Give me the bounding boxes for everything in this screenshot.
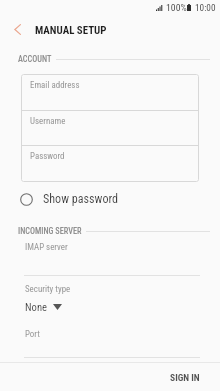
- staticText: INCOMING SERVER: [18, 226, 82, 236]
- staticText: 10:00: [195, 2, 216, 13]
- staticText: Show password: [43, 192, 119, 206]
- staticText: IMAP server: [25, 242, 68, 252]
- staticText: 100%: [166, 2, 187, 13]
- staticText: MANUAL SETUP: [35, 24, 107, 37]
- staticText: Password: [30, 151, 65, 161]
- button[interactable]: Username: [21, 110, 199, 146]
- button[interactable]: None: [25, 300, 62, 313]
- button[interactable]: SIGN IN: [150, 367, 220, 388]
- staticText: Email address: [30, 80, 80, 90]
- staticText: Port: [25, 329, 40, 339]
- staticText: SIGN IN: [170, 372, 200, 383]
- button[interactable]: Navigate up: [6, 14, 28, 44]
- staticText: Username: [30, 116, 66, 126]
- button[interactable]: Show password: [20, 189, 119, 209]
- staticText: ACCOUNT: [18, 54, 52, 64]
- staticText: None: [25, 301, 47, 313]
- staticText: Security type: [25, 284, 71, 294]
- button[interactable]: Password: [21, 145, 199, 181]
- button[interactable]: Email address: [21, 74, 199, 110]
